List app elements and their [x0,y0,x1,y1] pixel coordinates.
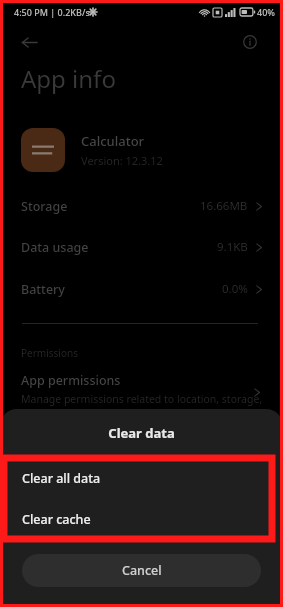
staticText: 40% [257,6,275,18]
staticText: Manage permissions related to location, … [21,392,263,406]
button[interactable]: Data usage [0,233,283,261]
staticText: Data usage [21,239,89,256]
button[interactable]: Back [15,28,43,56]
staticText: 4:50 PM | 0.2KB/s [14,6,90,18]
staticText: 16.66MB [200,198,248,214]
button[interactable]: Clear cache [0,499,283,539]
button[interactable]: Clear all data [0,457,283,499]
button[interactable]: Battery [0,275,283,303]
staticText: App permissions [21,372,121,389]
staticText: App info [21,62,116,95]
staticText: Clear cache [22,511,91,528]
staticText: 9.1KB [217,239,248,255]
button[interactable]: Cancel [22,554,261,587]
staticText: Storage [21,198,68,215]
staticText: Clear all data [22,470,101,487]
staticText: Calculator [81,132,145,150]
button[interactable]: Storage [0,192,283,220]
staticText: Battery [21,281,65,298]
staticText: Cancel [122,562,162,579]
button[interactable]: App info details [236,28,264,56]
staticText: Version: 12.3.12 [81,153,163,168]
staticText: Permissions [21,346,78,360]
staticText: 0.0% [222,281,248,297]
staticText: Clear data [108,424,175,442]
